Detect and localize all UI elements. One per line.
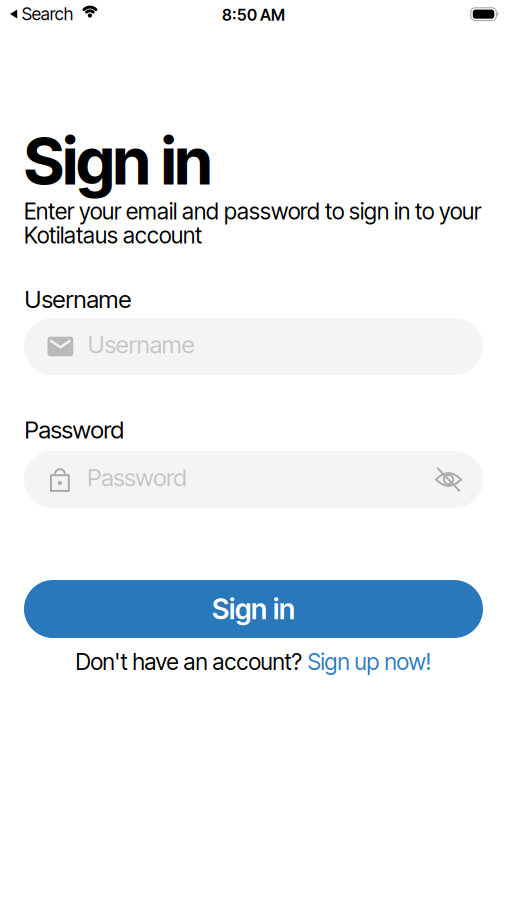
- staticText: Sign in: [24, 123, 213, 199]
- staticText: Sign up now!: [307, 648, 431, 675]
- staticText: Sign in: [212, 592, 295, 625]
- button[interactable]: Username: [24, 318, 483, 375]
- staticText: Enter your email and password to sign in…: [24, 198, 481, 249]
- staticText: Password: [87, 463, 186, 492]
- button[interactable]: Sign in: [24, 580, 483, 638]
- staticText: Username: [88, 330, 195, 359]
- staticText: Username: [24, 285, 131, 313]
- button[interactable]: Password: [24, 451, 483, 508]
- button[interactable]: [427, 460, 470, 498]
- staticText: Password: [24, 415, 123, 444]
- button[interactable]: Search: [10, 0, 99, 28]
- button[interactable]: Sign up now!: [307, 648, 431, 675]
- staticText: Search: [22, 4, 73, 24]
- staticText: Don't have an account?: [75, 648, 301, 675]
- staticText: 8:50 AM: [222, 5, 285, 24]
